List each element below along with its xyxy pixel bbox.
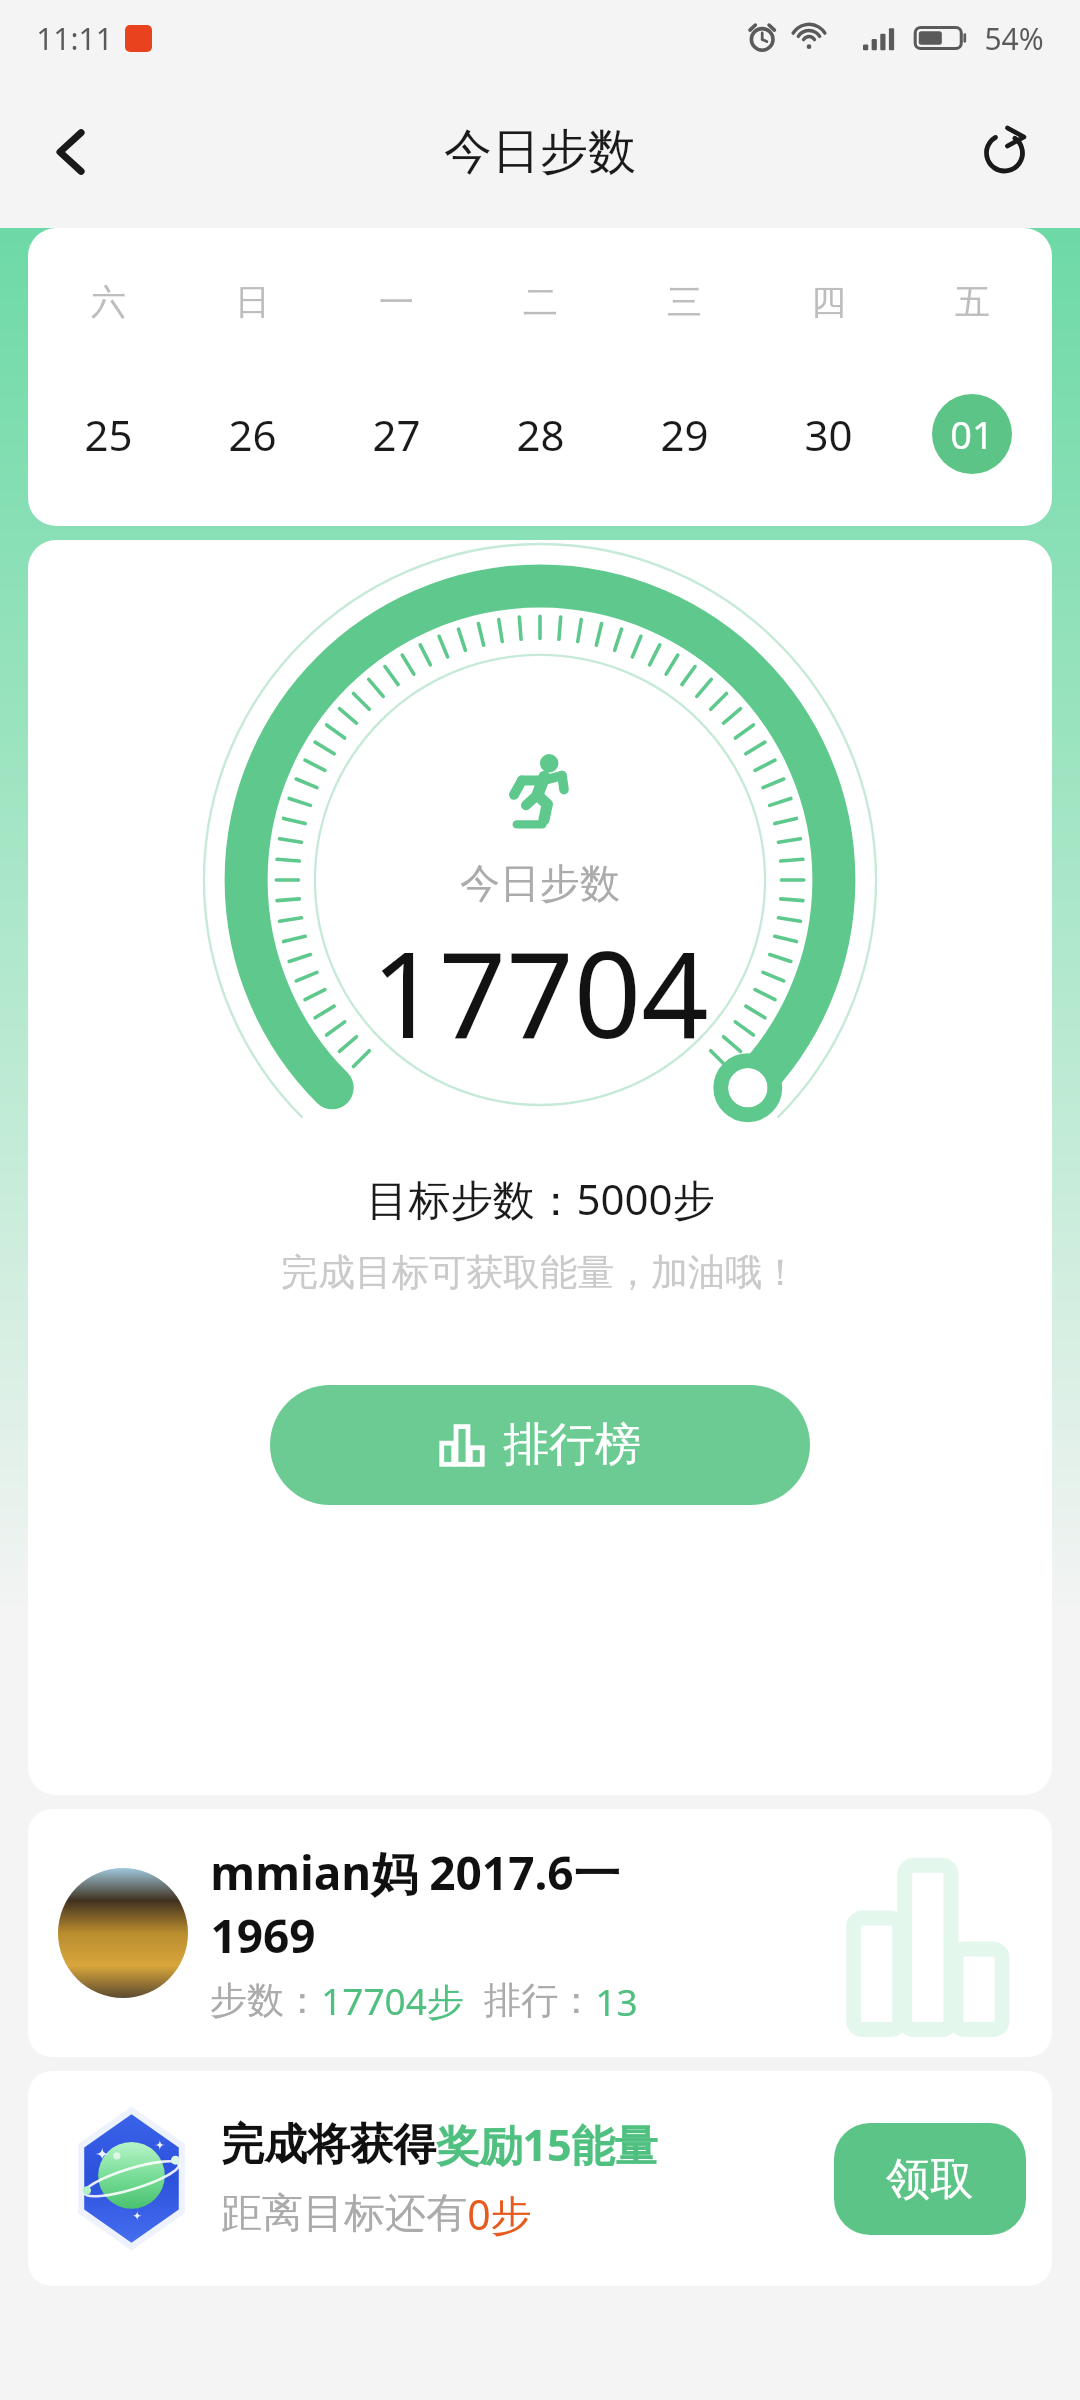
button[interactable]: mmian妈 2017.6一 [28, 1809, 1052, 2057]
staticText: 17704步 [321, 1975, 464, 2026]
staticText: 领取 [886, 2152, 974, 2207]
staticText: 26 [228, 406, 277, 463]
staticText: 30 [804, 406, 853, 463]
staticText: 奖励15能量 [436, 2115, 658, 2174]
staticText: mmian妈 2017.6一 [210, 1841, 620, 1904]
staticText: 排行榜 [503, 1416, 641, 1474]
staticText: 0步 [467, 2186, 532, 2242]
button[interactable]: 六 [28, 228, 1052, 526]
staticText: 完成将获得 [221, 2118, 436, 2172]
staticText: 今日步数 [444, 122, 636, 182]
button[interactable]: 排行榜 [270, 1385, 810, 1505]
staticText: 三 [667, 280, 702, 324]
staticText: 五 [955, 280, 990, 324]
staticText: 四 [811, 280, 846, 324]
staticText: 完成目标可获取能量，加油哦！ [281, 1249, 799, 1296]
staticText: 13 [595, 1976, 638, 2026]
staticText: 二 [523, 280, 558, 324]
staticText: 目标步数：5000步 [366, 1170, 715, 1227]
staticText: 17704 [371, 912, 709, 1073]
staticText: 54% [984, 18, 1044, 59]
staticText: 距离目标还有 [221, 2188, 467, 2240]
staticText: 六 [91, 280, 126, 324]
staticText: 27 [372, 406, 421, 463]
staticText: 今日步数 [460, 858, 620, 908]
staticText: 29 [660, 406, 709, 463]
button[interactable]: 领取 [834, 2123, 1026, 2235]
staticText: 1969 [210, 1904, 316, 1967]
staticText: 01 [950, 408, 994, 460]
button[interactable]: Back [22, 103, 120, 201]
button[interactable]: Share [956, 103, 1054, 201]
staticText: 排行： [484, 1977, 595, 2024]
staticText: 25 [84, 406, 133, 463]
staticText: 步数： [210, 1977, 321, 2024]
staticText: 日 [235, 280, 270, 324]
staticText: 11:11 [36, 18, 113, 59]
staticText: 一 [379, 280, 414, 324]
staticText: 28 [516, 406, 565, 463]
